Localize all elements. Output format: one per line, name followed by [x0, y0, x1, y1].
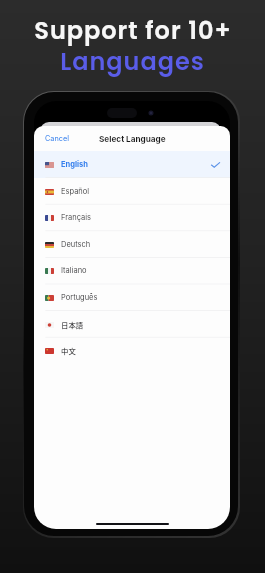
staticText: Languages — [60, 45, 205, 79]
staticText: 中文 — [61, 345, 76, 356]
button[interactable]: 日本語 — [34, 311, 230, 338]
button[interactable]: Italiano — [34, 257, 230, 284]
staticText: Français — [61, 213, 92, 222]
button[interactable]: Português — [34, 284, 230, 311]
staticText: Español — [61, 187, 90, 196]
button[interactable]: Français — [34, 204, 230, 231]
staticText: Deutsch — [61, 240, 91, 249]
button[interactable]: Español — [34, 178, 230, 205]
staticText: Select Language — [99, 134, 166, 144]
button[interactable]: Cancel — [45, 134, 69, 143]
button[interactable]: 中文 — [34, 337, 230, 364]
staticText: English — [61, 160, 88, 169]
staticText: Support for 10+ — [34, 14, 232, 48]
staticText: Italiano — [61, 266, 87, 275]
staticText: Cancel — [45, 134, 69, 143]
staticText: Português — [61, 293, 98, 302]
button[interactable]: English — [34, 151, 230, 178]
staticText: 日本語 — [61, 319, 84, 330]
button[interactable]: Deutsch — [34, 231, 230, 258]
